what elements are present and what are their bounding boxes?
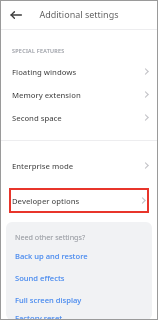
- button[interactable]: Floating windows: [0, 60, 158, 83]
- button[interactable]: Factory reset: [6, 313, 152, 320]
- button[interactable]: Sound effects: [6, 269, 152, 287]
- staticText: Back up and restore: [15, 251, 88, 261]
- staticText: Floating windows: [12, 67, 77, 77]
- button[interactable]: Memory extension: [0, 83, 158, 106]
- staticText: Additional settings: [39, 8, 119, 20]
- staticText: Developer options: [12, 196, 80, 206]
- staticText: Full screen display: [15, 295, 82, 305]
- staticText: SPECIAL FEATURES: [12, 47, 65, 54]
- button[interactable]: Back up and restore: [6, 247, 152, 265]
- staticText: Memory extension: [12, 90, 81, 100]
- button[interactable]: Developer options: [9, 188, 149, 213]
- button[interactable]: Back: [7, 6, 24, 23]
- staticText: Factory reset: [15, 313, 63, 320]
- staticText: Second space: [12, 113, 62, 123]
- button[interactable]: Second space: [0, 106, 158, 129]
- staticText: Sound effects: [15, 273, 65, 283]
- button[interactable]: Full screen display: [6, 291, 152, 309]
- button[interactable]: Enterprise mode: [0, 154, 158, 177]
- staticText: Enterprise mode: [12, 161, 74, 171]
- staticText: Need other settings?: [15, 232, 86, 242]
